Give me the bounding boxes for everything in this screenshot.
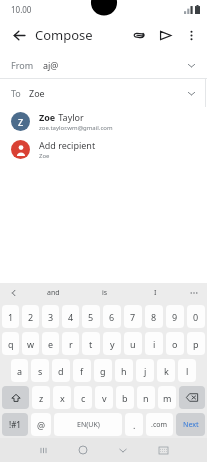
button[interactable]: Send [152,22,178,48]
button[interactable]: r [62,332,79,355]
staticText: I [154,288,157,298]
staticText: Taylor [56,111,84,123]
staticText: 7 [130,311,136,323]
button[interactable]: Home [63,438,103,462]
button[interactable]: 3 [42,305,59,328]
staticText: @ [37,419,46,431]
button[interactable]: j [136,359,154,382]
staticText: h [121,365,127,377]
staticText: 0 [193,311,199,323]
staticText: 8 [151,311,157,323]
button[interactable]: 2 [22,305,39,328]
staticText: e [48,338,54,350]
button[interactable]: 9 [166,305,184,328]
staticText: 5 [88,311,94,323]
button[interactable]: 0 [187,305,205,328]
staticText: Compose [35,26,93,44]
staticText: f [80,365,84,377]
button[interactable]: i [145,332,163,355]
button[interactable]: 4 [62,305,79,328]
button[interactable]: More options [178,22,204,48]
button[interactable]: s [31,359,49,382]
staticText: 4 [68,311,74,323]
button[interactable]: 7 [124,305,142,328]
button[interactable]: Attach file [126,22,152,48]
button[interactable]: !#1 [2,413,28,436]
button[interactable]: is [79,283,130,303]
button[interactable]: g [94,359,112,382]
button[interactable]: Hide keyboard [103,438,143,462]
staticText: l [186,365,189,377]
button[interactable]: 8 [145,305,163,328]
button[interactable]: Keyboard settings [143,438,183,462]
staticText: is [102,288,108,298]
button[interactable]: Back [6,22,32,48]
staticText: c [81,392,86,404]
button[interactable]: p [187,332,205,355]
button[interactable]: x [53,386,71,409]
button[interactable]: f [73,359,91,382]
button[interactable]: w [22,332,39,355]
button[interactable]: q [2,332,19,355]
staticText: r [69,338,73,350]
button[interactable]: Previous suggestions [0,283,28,303]
button[interactable]: Next [176,413,205,436]
staticText: n [143,392,149,404]
button[interactable]: a [11,359,28,382]
button[interactable]: c [74,386,92,409]
staticText: k [164,365,169,377]
staticText: t [89,338,93,350]
staticText: g [100,365,106,377]
staticText: Z [18,116,24,128]
button[interactable]: t [82,332,100,355]
button[interactable]: To [0,79,207,107]
button[interactable]: o [166,332,184,355]
button[interactable]: m [158,386,176,409]
button[interactable]: k [157,359,175,382]
staticText: v [102,392,107,404]
staticText: !#1 [9,419,21,430]
staticText: To [11,87,21,99]
button[interactable]: 1 [2,305,19,328]
button[interactable]: Recent apps [23,438,63,462]
button[interactable]: More suggestions [181,283,207,303]
button[interactable]: y [103,332,121,355]
staticText: w [27,338,35,350]
button[interactable]: @ [31,413,51,436]
button[interactable]: Shift [2,386,29,409]
button[interactable]: 6 [103,305,121,328]
staticText: a [17,365,23,377]
button[interactable]: e [42,332,59,355]
button[interactable]: .com [146,413,173,436]
button[interactable]: u [124,332,142,355]
button[interactable]: l [178,359,196,382]
staticText: z [39,392,44,404]
button[interactable]: Z [0,107,207,135]
staticText: 10.00 [11,4,32,15]
staticText: 1 [8,311,14,323]
staticText: d [58,365,64,377]
button[interactable]: n [137,386,155,409]
button[interactable]: From [0,52,207,78]
button[interactable]: z [32,386,50,409]
staticText: i [153,338,156,350]
staticText: s [38,365,43,377]
button[interactable]: h [115,359,133,382]
button[interactable]: b [116,386,134,409]
button[interactable]: . [125,413,143,436]
staticText: y [110,338,115,350]
staticText: EN(UK) [77,420,100,430]
button[interactable]: d [52,359,70,382]
button[interactable]: I [130,283,181,303]
staticText: x [60,392,65,404]
button[interactable]: and [28,283,79,303]
button[interactable]: 5 [82,305,100,328]
button[interactable]: Add recipient [0,135,207,163]
staticText: 6 [109,311,115,323]
button[interactable]: Backspace [179,386,205,409]
button[interactable]: v [95,386,113,409]
staticText: . [133,419,136,431]
button[interactable]: EN(UK) [54,413,122,436]
staticText: From [11,59,34,71]
staticText: Zoe [39,152,50,160]
